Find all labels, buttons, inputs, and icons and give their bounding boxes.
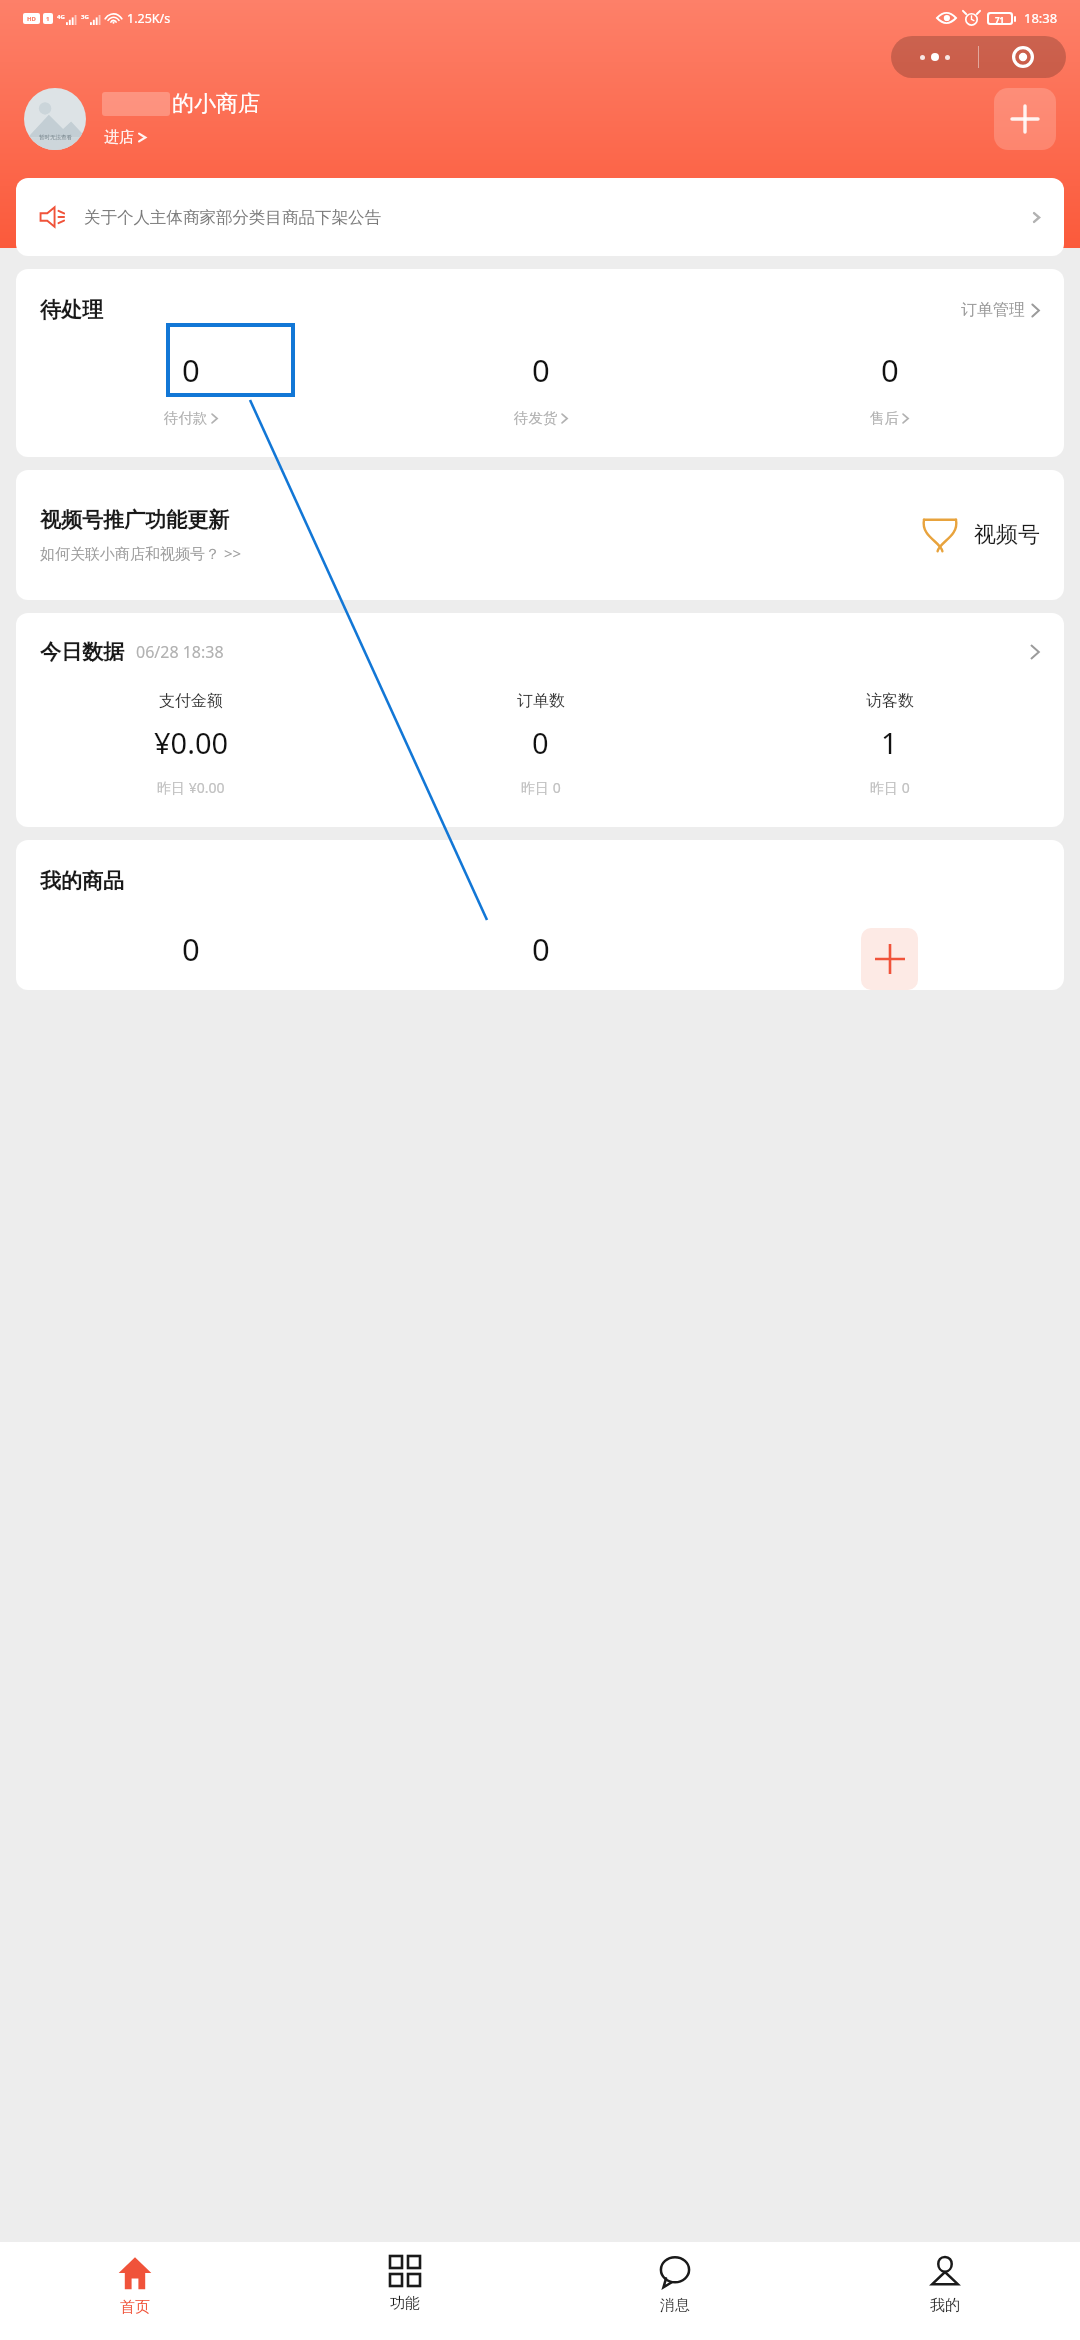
staticText: 0 <box>532 723 549 762</box>
button[interactable]: 订单管理 <box>961 300 1040 320</box>
staticText: 访客数 <box>866 691 914 711</box>
staticText: 进店 <box>104 128 134 147</box>
staticText: 4G <box>57 13 65 21</box>
staticText: 支付金额 <box>159 691 223 711</box>
staticText: 首页 <box>120 2298 150 2317</box>
button[interactable]: 支付金额 <box>16 691 366 797</box>
button[interactable]: 首页 <box>0 2242 270 2340</box>
staticText: 0 <box>532 928 550 970</box>
staticText: 昨日 0 <box>870 778 910 797</box>
staticText: 06/28 18:38 <box>136 641 224 663</box>
staticText: 视频号推广功能更新 <box>40 507 229 533</box>
staticText: 如何关联小商店和视频号？ >> <box>40 543 242 563</box>
staticText: 我的商品 <box>40 868 124 894</box>
button[interactable]: 消息 <box>540 2242 810 2340</box>
staticText: 昨日 0 <box>521 778 561 797</box>
staticText: 消息 <box>660 2296 690 2315</box>
staticText: 订单数 <box>517 691 565 711</box>
staticText: 待处理 <box>40 297 103 323</box>
staticText: ¥0.00 <box>154 723 229 762</box>
staticText: 售后 <box>870 409 899 427</box>
staticText: 待付款 <box>164 409 208 427</box>
button[interactable]: 0 <box>715 349 1064 427</box>
staticText: 0 <box>182 349 200 391</box>
staticText: 待发货 <box>514 409 558 427</box>
staticText: 视频号 <box>974 521 1040 549</box>
staticText: 0 <box>881 349 899 391</box>
button[interactable]: 关于个人主体商家部分类目商品下架公告 <box>16 178 1064 256</box>
staticText: 我的 <box>930 2296 960 2315</box>
button[interactable]: 0 <box>16 349 366 427</box>
button[interactable]: 访客数 <box>715 691 1064 797</box>
staticText: 18:38 <box>1024 9 1058 27</box>
staticText: 1.25K/s <box>127 10 171 27</box>
button[interactable]: 0 <box>366 349 715 427</box>
button[interactable]: 进店 <box>102 127 149 148</box>
button[interactable]: 我的 <box>810 2242 1080 2340</box>
staticText: 71 <box>995 14 1005 23</box>
staticText: HD <box>27 15 36 23</box>
staticText: 的小商店 <box>172 90 260 118</box>
staticText: 关于个人主体商家部分类目商品下架公告 <box>84 207 381 228</box>
button[interactable]: Add product <box>861 928 918 990</box>
staticText: 今日数据 <box>40 639 124 665</box>
staticText: 昨日 ¥0.00 <box>157 778 225 797</box>
staticText: 0 <box>532 349 550 391</box>
button[interactable]: Shop avatar <box>24 88 86 150</box>
staticText: 3G <box>81 13 89 21</box>
button[interactable]: Mini program menu <box>891 36 1066 78</box>
staticText: 订单管理 <box>961 300 1025 320</box>
button[interactable]: 今日数据 <box>40 639 1040 665</box>
staticText: 1 <box>881 723 898 762</box>
button[interactable]: 功能 <box>270 2242 540 2340</box>
staticText: 0 <box>182 928 200 970</box>
staticText: 暂时无法查看 <box>39 134 72 141</box>
button[interactable]: Add <box>994 88 1056 150</box>
button[interactable]: 订单数 <box>366 691 715 797</box>
staticText: 1 <box>46 15 50 23</box>
staticText: 功能 <box>390 2294 420 2313</box>
button[interactable]: 视频号推广功能更新 <box>16 470 1064 600</box>
